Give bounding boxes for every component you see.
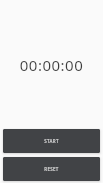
button[interactable]: START bbox=[3, 129, 100, 153]
staticText: RESET bbox=[44, 166, 59, 172]
staticText: START bbox=[44, 138, 59, 144]
button[interactable]: RESET bbox=[3, 157, 100, 181]
staticText: 00:00:00 bbox=[0, 55, 103, 75]
